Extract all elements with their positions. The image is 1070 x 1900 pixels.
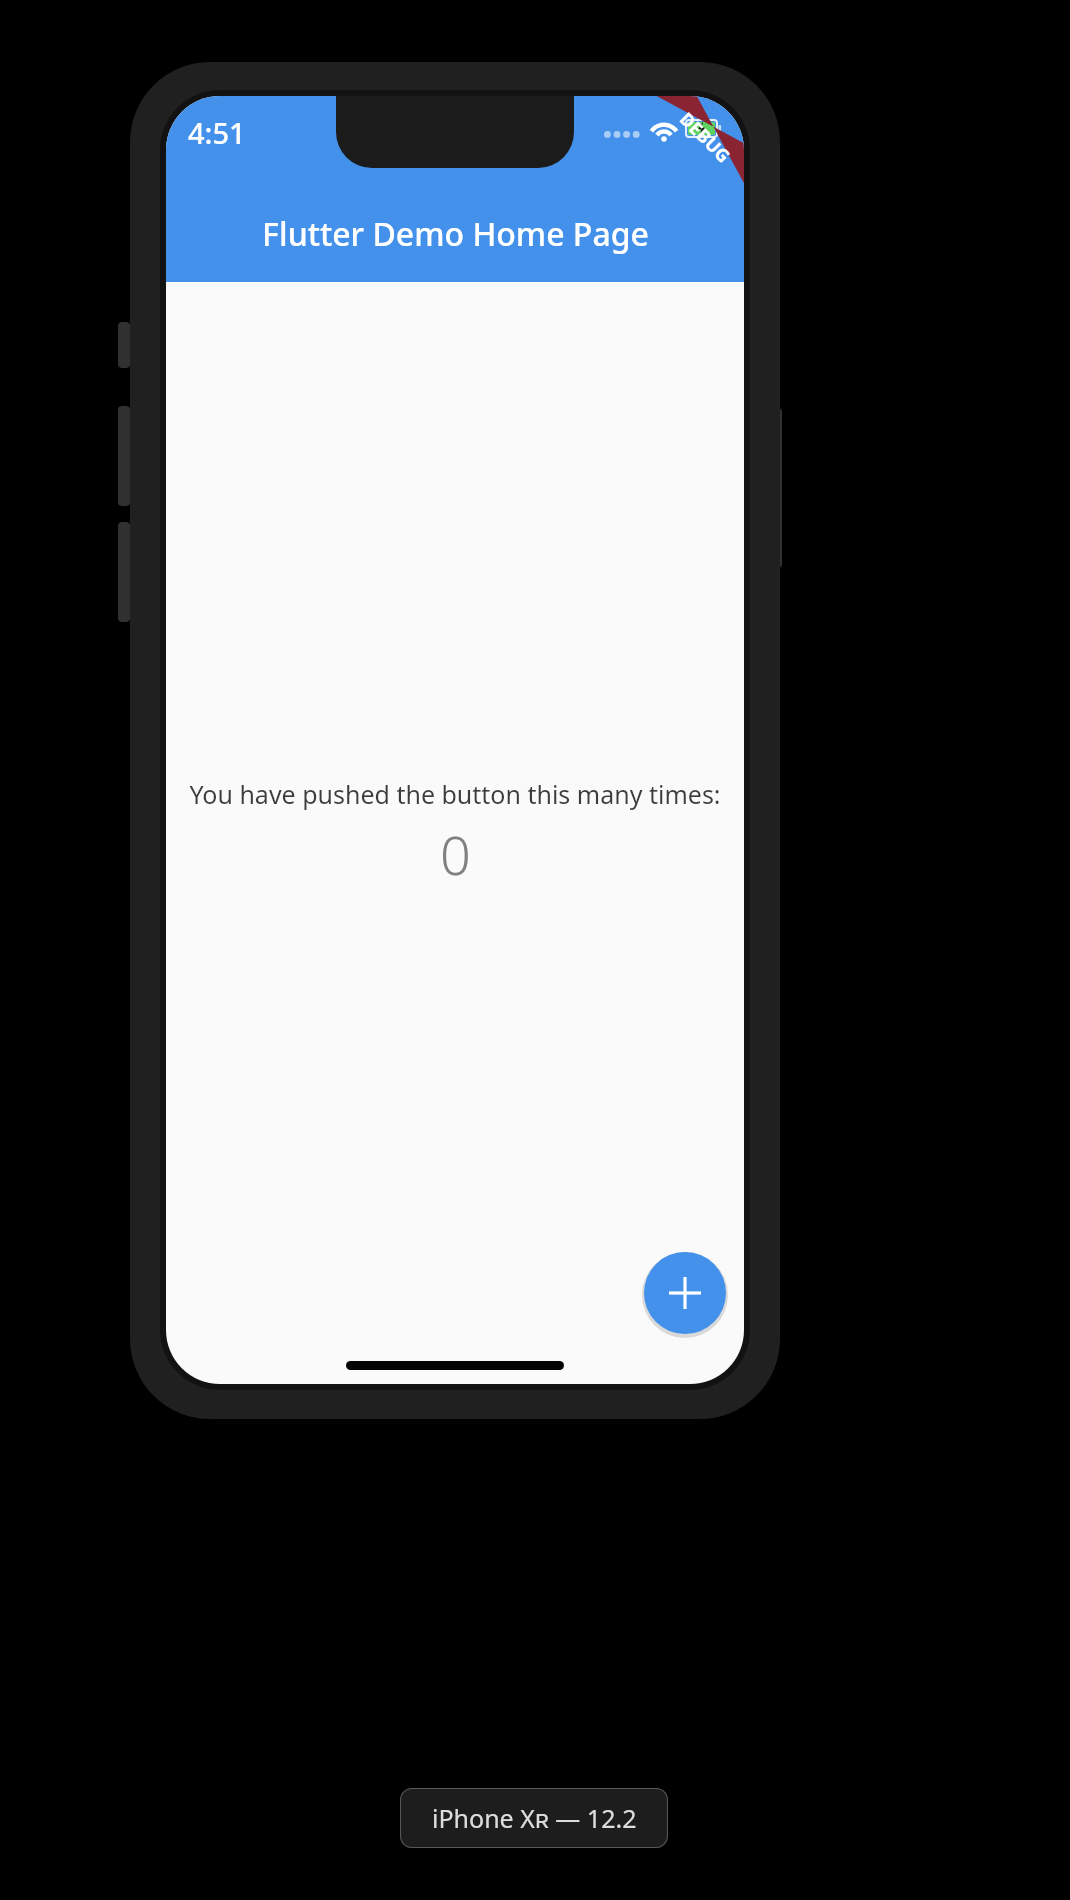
staticText: DEBUG <box>674 107 736 168</box>
staticText: iPhone Xʀ — 12.2 <box>432 1801 637 1835</box>
button[interactable]: iPhone Xʀ — 12.2 <box>400 1788 668 1848</box>
staticText: 4:51 <box>188 113 246 152</box>
button[interactable]: Increment <box>644 1252 726 1334</box>
staticText: You have pushed the button this many tim… <box>189 777 721 811</box>
staticText: 0 <box>440 817 471 891</box>
staticText: Flutter Demo Home Page <box>262 212 649 256</box>
